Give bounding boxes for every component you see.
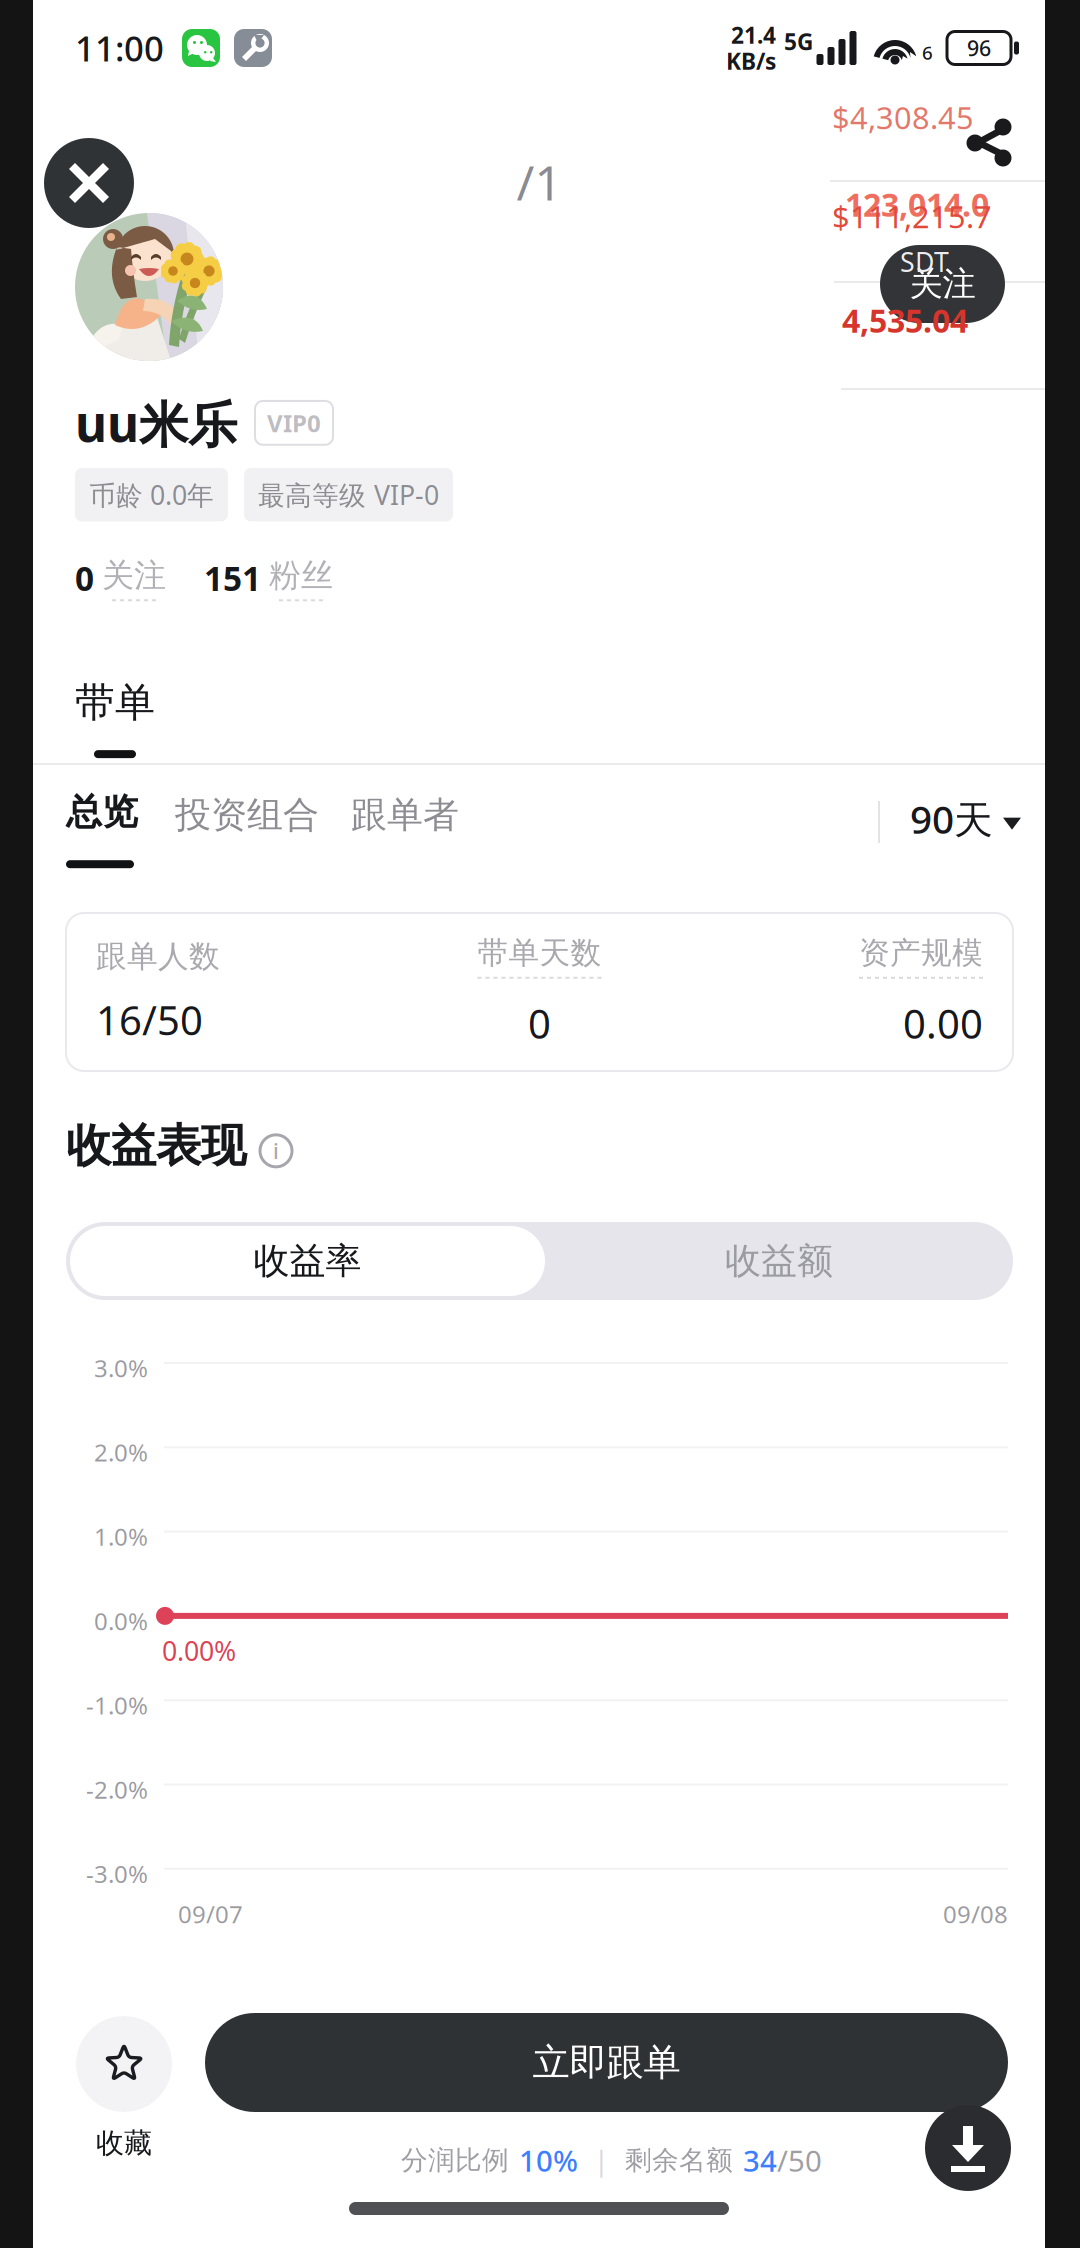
staticText: 5G: [784, 26, 813, 56]
staticText: 0.0%: [94, 1605, 148, 1637]
button[interactable]: 立即跟单: [205, 2013, 1008, 2112]
staticText: 最高等级 VIP-0: [258, 477, 439, 512]
button[interactable]: 0: [75, 556, 333, 601]
staticText: 投资组合: [175, 793, 319, 837]
button[interactable]: 收益率: [70, 1226, 545, 1296]
staticText: 粉丝: [269, 556, 333, 595]
button[interactable]: 总览: [66, 790, 138, 868]
staticText: -3.0%: [86, 1858, 148, 1890]
staticText: 90天: [910, 793, 993, 844]
staticText: 151: [204, 556, 261, 600]
staticText: -1.0%: [86, 1689, 148, 1721]
staticText: 09/08: [943, 1898, 1008, 1930]
button[interactable]: 收藏: [76, 2016, 172, 2160]
staticText: 币龄 0.0年: [89, 477, 214, 512]
staticText: 16/50: [96, 993, 203, 1046]
staticText: 0: [75, 556, 94, 600]
staticText: 2.0%: [94, 1436, 148, 1468]
staticText: /1: [516, 150, 561, 214]
staticText: 关注: [909, 263, 975, 304]
staticText: uu米乐: [75, 390, 237, 456]
button[interactable]: Close: [44, 138, 134, 228]
staticText: 分润比例: [401, 2144, 509, 2177]
staticText: /50: [777, 2141, 822, 2180]
staticText: KB/s: [726, 46, 776, 76]
staticText: 11:00: [75, 25, 164, 71]
staticText: 关注: [102, 556, 166, 595]
staticText: 10%: [519, 2141, 578, 2180]
staticText: 21.4: [731, 20, 776, 50]
staticText: 带单天数: [477, 934, 601, 972]
staticText: 3.0%: [94, 1352, 148, 1384]
staticText: 34: [743, 2141, 777, 2180]
staticText: 跟单人数: [96, 938, 220, 975]
staticText: 0.00%: [162, 1633, 236, 1668]
staticText: 立即跟单: [532, 2040, 680, 2085]
staticText: -2.0%: [86, 1773, 148, 1805]
button[interactable]: 90天: [910, 793, 1021, 844]
button[interactable]: 收益额: [545, 1226, 1013, 1296]
button[interactable]: 投资组合: [175, 793, 319, 837]
button[interactable]: 关注: [880, 245, 1005, 323]
staticText: 总览: [66, 790, 138, 834]
staticText: VIP0: [267, 407, 321, 439]
staticText: 123,014.0: [845, 183, 989, 225]
staticText: 1.0%: [94, 1521, 148, 1552]
staticText: i: [273, 1137, 279, 1165]
staticText: 收益表现: [66, 1118, 246, 1174]
staticText: 资产规模: [859, 934, 983, 972]
button[interactable]: 带单: [75, 678, 155, 758]
staticText: 剩余名额: [625, 2144, 733, 2177]
staticText: 96: [967, 34, 991, 62]
button[interactable]: 跟单者: [351, 793, 459, 837]
staticText: 0.00: [903, 997, 983, 1050]
staticText: |: [594, 2143, 609, 2178]
staticText: 4,535.04: [842, 299, 968, 341]
staticText: 09/07: [178, 1898, 243, 1930]
staticText: 跟单者: [351, 793, 459, 837]
button[interactable]: Download: [925, 2105, 1011, 2191]
staticText: 收益率: [253, 1239, 361, 1283]
staticText: 收藏: [96, 2126, 152, 2160]
staticText: $4,308.45: [832, 97, 974, 138]
staticText: $111,215.7: [832, 196, 992, 237]
staticText: 0: [528, 997, 551, 1050]
staticText: 6: [922, 40, 933, 65]
staticText: SDT: [900, 244, 949, 279]
staticText: 带单: [75, 678, 155, 727]
staticText: 收益额: [725, 1239, 833, 1283]
